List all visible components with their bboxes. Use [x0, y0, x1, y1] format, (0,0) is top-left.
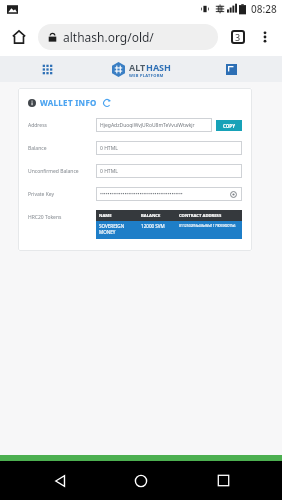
staticText: 3	[235, 31, 241, 43]
button[interactable]: Back	[38, 461, 82, 500]
staticText: Private Key	[28, 191, 55, 198]
button[interactable]: ••••••••••••••••••••••••••••••••••••••••…	[96, 187, 242, 201]
staticText: CONTRACT ADDRESS	[179, 213, 239, 219]
staticText: NAME	[99, 213, 141, 219]
staticText: HRC20 Tokens	[28, 214, 62, 221]
staticText: althash.org/old/	[63, 29, 154, 45]
staticText: 8112502f56d46d6fd1179059f207b6	[179, 223, 239, 228]
button[interactable]: Recent apps	[201, 461, 245, 500]
staticText: 0 HTML	[100, 145, 118, 152]
staticText: WEB PLATFORM	[129, 73, 164, 78]
button[interactable]: Refresh	[102, 98, 112, 108]
button[interactable]: althash.org/old/	[38, 24, 218, 50]
button[interactable]: Apps grid	[38, 60, 56, 78]
staticText: WALLET INFO	[40, 97, 97, 108]
button[interactable]: More options	[252, 24, 278, 50]
staticText: ••••••••••••••••••••••••••••••••••••••••…	[100, 191, 183, 198]
staticText: HASH	[146, 61, 171, 73]
button[interactable]: WALLET INFO	[28, 97, 112, 108]
button[interactable]: COPY	[216, 120, 242, 131]
button[interactable]: Tabs: 3	[226, 25, 250, 49]
button[interactable]: Home	[6, 24, 32, 50]
staticText: Address	[28, 122, 47, 129]
button[interactable]: Open wallet	[222, 60, 240, 78]
button[interactable]: 0 HTML	[96, 141, 242, 155]
button[interactable]: HjegAdzDuoqiWvjURoU8mTeVvuiWtwkjr	[96, 118, 212, 132]
button[interactable]: Show private key	[229, 190, 238, 199]
staticText: SOVEREIGN MONEY	[99, 223, 141, 235]
button[interactable]: Home	[119, 461, 163, 500]
staticText: 12000 SVM	[141, 223, 179, 229]
staticText: ALT	[129, 61, 146, 73]
staticText: BALANCE	[141, 213, 179, 219]
button[interactable]: 0 HTML	[96, 164, 242, 178]
staticText: Balance	[28, 145, 47, 152]
staticText: HjegAdzDuoqiWvjURoU8mTeVvuiWtwkjr	[100, 122, 195, 129]
staticText: Unconfirmed Balance	[28, 168, 79, 175]
staticText: COPY	[223, 123, 235, 129]
staticText: 08:28	[251, 2, 277, 16]
button[interactable]: SOVEREIGN MONEY	[96, 221, 242, 239]
button[interactable]: ALT	[111, 61, 171, 78]
staticText: 0 HTML	[100, 168, 118, 175]
